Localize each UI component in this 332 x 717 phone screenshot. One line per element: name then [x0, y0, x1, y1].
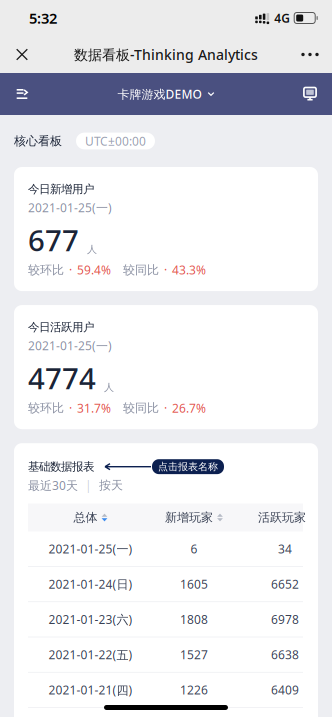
button[interactable]: Menu: [0, 73, 44, 115]
staticText: 较环比: [28, 262, 64, 277]
staticText: 较同比: [123, 400, 159, 415]
staticText: 6652: [271, 576, 299, 592]
staticText: 点击报表名称: [158, 460, 218, 473]
staticText: 2021-01-23(六): [48, 611, 132, 627]
staticText: 677: [28, 220, 79, 260]
staticText: 1226: [180, 682, 208, 698]
staticText: 较环比: [28, 400, 64, 415]
staticText: 数据看板-Thinking Analytics: [74, 45, 258, 64]
staticText: ·: [69, 262, 72, 278]
staticText: 4774: [28, 358, 96, 398]
staticText: 核心看板: [14, 133, 62, 148]
staticText: 6409: [271, 682, 299, 698]
staticText: 2021-01-21(四): [48, 682, 132, 698]
staticText: ·: [69, 400, 72, 416]
staticText: 6: [190, 541, 197, 557]
staticText: 按天: [99, 478, 123, 493]
staticText: 2021-01-22(五): [48, 646, 132, 663]
staticText: 34: [278, 541, 292, 557]
staticText: 43.3%: [172, 262, 206, 278]
staticText: 6638: [271, 646, 299, 663]
staticText: 总体: [74, 510, 98, 525]
staticText: 卡牌游戏DEMO: [118, 86, 202, 102]
staticText: 1808: [180, 611, 208, 627]
staticText: 2021-01-24(日): [48, 576, 132, 592]
staticText: 1527: [180, 646, 208, 663]
staticText: 59.4%: [77, 262, 111, 278]
staticText: 2021-01-25(一): [28, 337, 112, 354]
staticText: 新增玩家: [165, 510, 213, 525]
staticText: 人: [104, 381, 114, 394]
staticText: 4G: [274, 10, 290, 26]
staticText: UTC±00:00: [85, 133, 146, 149]
staticText: 较同比: [123, 262, 159, 277]
staticText: ·: [164, 400, 167, 416]
staticText: 31.7%: [77, 400, 111, 416]
staticText: 6978: [271, 611, 299, 627]
staticText: |: [85, 477, 92, 493]
button[interactable]: Display: [288, 73, 332, 115]
staticText: 今日活跃用户: [28, 320, 94, 334]
staticText: 基础数据报表: [28, 459, 94, 474]
staticText: 5:32: [29, 8, 57, 28]
staticText: 今日新增用户: [28, 182, 94, 196]
staticText: 2021-01-25(一): [48, 541, 132, 557]
staticText: 1605: [180, 576, 208, 592]
button[interactable]: More options: [288, 36, 332, 73]
staticText: 2021-01-25(一): [28, 199, 112, 216]
staticText: 26.7%: [172, 400, 206, 416]
staticText: 人: [87, 243, 97, 256]
button[interactable]: 卡牌游戏DEMO: [118, 73, 214, 115]
button[interactable]: Close: [0, 36, 44, 73]
staticText: ·: [164, 262, 167, 278]
staticText: 最近30天: [28, 477, 78, 493]
staticText: 活跃玩家: [258, 510, 306, 525]
